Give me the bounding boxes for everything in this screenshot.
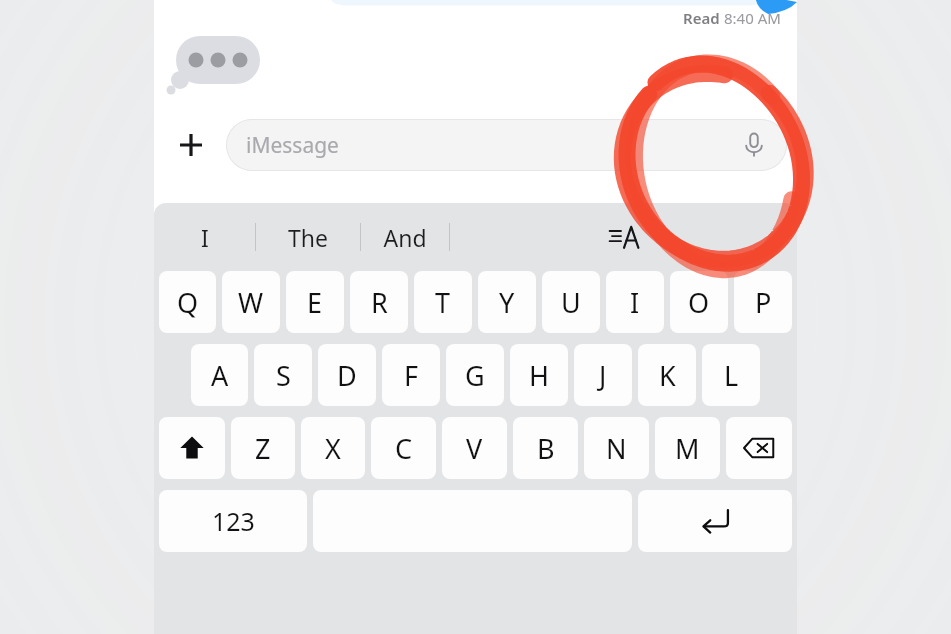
staticText: The [288,222,328,253]
button[interactable]: S [254,344,312,406]
button[interactable]: W [222,271,280,333]
staticText: 123 [212,504,255,538]
button[interactable]: N [584,417,649,479]
button[interactable]: Shift [159,417,225,479]
button[interactable]: And [361,203,449,271]
button[interactable]: M [655,417,720,479]
button[interactable]: Z [231,417,295,479]
button[interactable]: U [542,271,600,333]
button[interactable]: I [606,271,664,333]
staticText: I [630,284,640,321]
staticText: V [466,430,483,467]
staticText: I [201,222,209,253]
staticText: iMessage [246,131,339,160]
staticText: Y [499,284,515,321]
staticText: E [307,284,323,321]
button[interactable]: Record audio message [737,128,771,162]
staticText: R [371,284,388,321]
button[interactable]: F [382,344,440,406]
staticText: Z [255,430,271,467]
staticText: G [465,357,485,394]
staticText: And [383,222,427,253]
button[interactable]: Formatting [450,203,797,271]
staticText: O [688,284,710,321]
button[interactable]: C [371,417,436,479]
button[interactable]: E [286,271,344,333]
staticText: T [435,284,451,321]
staticText: Read [683,8,724,28]
staticText: J [599,357,607,394]
button[interactable]: D [318,344,376,406]
button[interactable]: A [191,344,248,406]
button[interactable]: Add attachment [164,118,218,172]
staticText: K [659,357,676,394]
button[interactable]: B [513,417,578,479]
button[interactable]: Y [478,271,536,333]
staticText: M [675,430,700,467]
staticText: U [561,284,581,321]
button[interactable]: 123 [159,490,307,552]
staticText: D [337,357,357,394]
staticText: L [724,357,739,394]
staticText: P [755,284,772,321]
button[interactable]: G [446,344,504,406]
staticText: C [395,430,413,467]
button[interactable]: Q [159,271,216,333]
staticText: W [238,284,264,321]
staticText: Q [177,284,199,321]
staticText: S [276,357,291,394]
button[interactable]: iMessage [226,119,787,171]
staticText: X [325,430,341,467]
button[interactable]: J [574,344,632,406]
button[interactable]: O [670,271,728,333]
button[interactable]: I [154,203,255,271]
button[interactable]: P [734,271,792,333]
button[interactable]: X [301,417,365,479]
button[interactable]: T [414,271,472,333]
staticText: B [537,430,555,467]
button[interactable]: H [510,344,568,406]
staticText: H [529,357,550,394]
button[interactable]: L [702,344,760,406]
button[interactable]: Return [638,490,792,552]
button[interactable]: K [638,344,696,406]
staticText: F [404,357,419,394]
staticText: 8:40 AM [724,8,781,28]
staticText: N [606,430,627,467]
button[interactable]: The [256,203,360,271]
button[interactable]: V [442,417,507,479]
staticText: A [211,357,229,394]
button[interactable]: Delete [726,417,792,479]
button[interactable]: R [350,271,408,333]
